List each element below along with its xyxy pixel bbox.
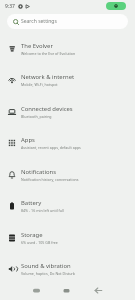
staticText: 84% - 16 min left until full — [21, 208, 64, 213]
staticText: 6% used - 105 GB free — [21, 240, 58, 245]
staticText: Welcome to the Eve of Evolution — [21, 51, 76, 56]
staticText: Notification history, conversations — [21, 177, 79, 182]
staticText: The Evolver — [21, 42, 53, 50]
button[interactable]: Network & internet — [0, 64, 135, 96]
button[interactable]: Storage — [0, 222, 135, 253]
staticText: Assistant, recent apps, default apps — [21, 145, 81, 150]
button[interactable] — [92, 283, 105, 298]
staticText: Notifications — [21, 168, 57, 176]
staticText: Battery — [21, 199, 42, 207]
staticText: Bluetooth, pairing — [21, 114, 52, 119]
button[interactable] — [30, 283, 43, 298]
staticText: Mobile, Wi-Fi, hotspot — [21, 82, 58, 87]
staticText: Network & internet — [21, 73, 75, 81]
staticText: Apps — [21, 136, 35, 144]
staticText: Search settings — [21, 18, 57, 25]
button[interactable]: Connected devices — [0, 96, 135, 127]
staticText: Storage — [21, 231, 43, 239]
button[interactable] — [60, 283, 73, 298]
button[interactable]: Battery — [0, 190, 135, 222]
button[interactable]: Notifications — [0, 159, 135, 190]
staticText: 9:37 — [5, 3, 15, 10]
button[interactable]: Apps — [0, 127, 135, 159]
staticText: Connected devices — [21, 105, 73, 113]
staticText: Sound & vibration — [21, 262, 71, 270]
button[interactable]: The Evolver — [0, 33, 135, 64]
button[interactable]: Search settings — [7, 14, 128, 29]
button[interactable]: Sound & vibration — [0, 253, 135, 285]
staticText: Volume, haptics, Do Not Disturb — [21, 271, 76, 276]
